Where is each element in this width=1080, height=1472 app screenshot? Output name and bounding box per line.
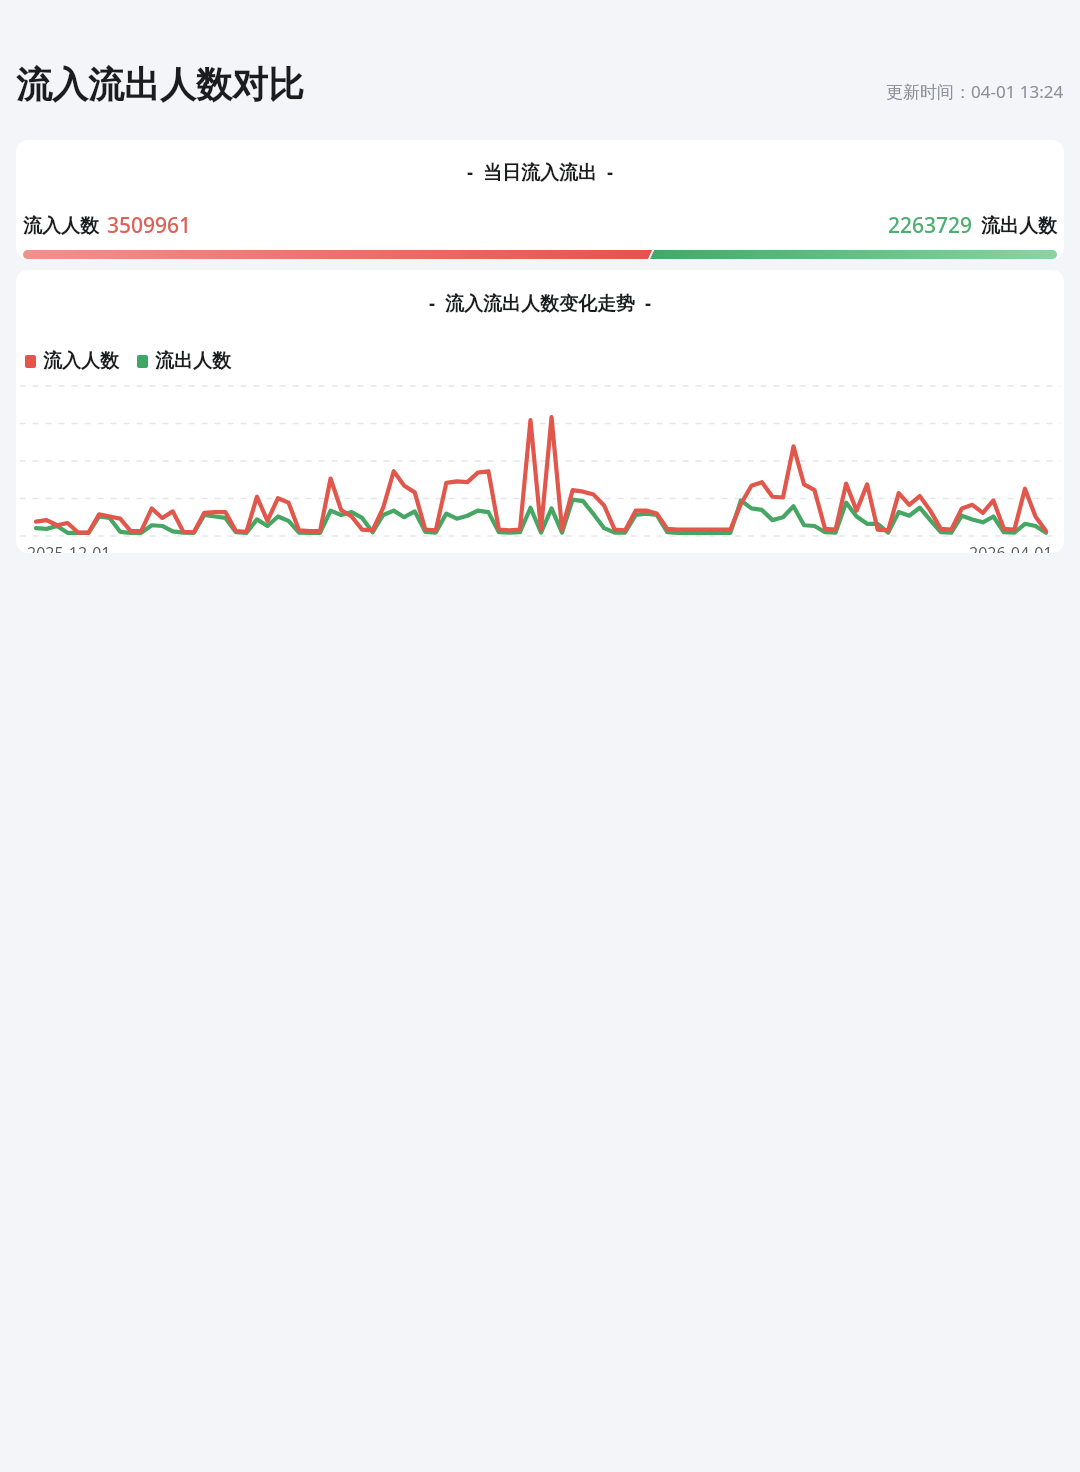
staticText: 2026-04-01: [969, 542, 1053, 553]
button[interactable]: - 当日流入流出 -: [16, 140, 1064, 259]
staticText: 流入人数: [23, 214, 99, 238]
staticText: 更新时间：04-01 13:24: [886, 80, 1064, 103]
staticText: 2025-12-01: [27, 542, 111, 553]
staticText: - 当日流入流出 -: [16, 159, 1064, 185]
staticText: 2263729: [888, 211, 973, 240]
staticText: 3509961: [107, 211, 192, 240]
staticText: 流入人数: [43, 349, 119, 373]
staticText: 流出人数: [155, 349, 231, 373]
staticText: 流出人数: [981, 214, 1057, 238]
other: 流入流出人数变化走势折线图: [16, 386, 1064, 536]
other: 流入流出比例: [23, 250, 1057, 259]
button[interactable]: 流出人数: [137, 349, 231, 373]
button[interactable]: 流入人数: [25, 349, 119, 373]
staticText: - 流入流出人数变化走势 -: [16, 290, 1064, 316]
button[interactable]: - 流入流出人数变化走势 -: [16, 270, 1064, 553]
staticText: 流入流出人数对比: [16, 62, 304, 107]
